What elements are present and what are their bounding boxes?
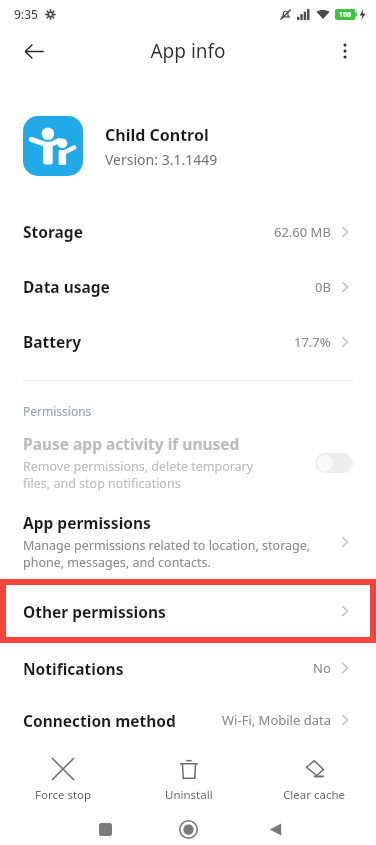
staticText: Permissions bbox=[23, 403, 92, 419]
staticText: 0B bbox=[315, 278, 331, 296]
button[interactable]: Battery bbox=[0, 314, 376, 369]
staticText: Data usage bbox=[23, 276, 110, 297]
staticText: App permissions bbox=[23, 512, 151, 533]
staticText: 17.7% bbox=[294, 333, 331, 351]
button[interactable]: More options bbox=[328, 34, 362, 68]
button[interactable]: Back bbox=[258, 814, 292, 845]
button[interactable]: Other permissions bbox=[3, 582, 373, 640]
staticText: 9:35 bbox=[14, 6, 38, 22]
button[interactable]: Home bbox=[171, 814, 205, 845]
staticText: Notifications bbox=[23, 658, 124, 679]
staticText: Child Control bbox=[105, 124, 209, 146]
staticText: 100 bbox=[339, 10, 352, 20]
button[interactable]: Back bbox=[16, 33, 52, 69]
button[interactable]: Data usage bbox=[0, 259, 376, 314]
button[interactable]: Force stop bbox=[0, 746, 126, 814]
staticText: Version: 3.1.1449 bbox=[105, 150, 218, 169]
staticText: Force stop bbox=[35, 787, 92, 803]
staticText: Battery bbox=[23, 331, 82, 352]
button[interactable]: Storage bbox=[0, 204, 376, 259]
button[interactable]: Pause app activity toggle bbox=[315, 453, 353, 473]
button[interactable]: Notifications bbox=[0, 642, 376, 694]
staticText: App info bbox=[150, 38, 226, 64]
button[interactable]: Clear cache bbox=[251, 746, 376, 814]
button[interactable]: Recents bbox=[88, 814, 122, 845]
staticText: Remove permissions, delete temporary fil… bbox=[23, 458, 254, 492]
staticText: Storage bbox=[23, 221, 83, 242]
button[interactable]: Pause app activity if unused bbox=[0, 433, 376, 492]
staticText: Pause app activity if unused bbox=[23, 433, 240, 454]
staticText: Clear cache bbox=[283, 787, 345, 803]
staticText: Other permissions bbox=[23, 601, 166, 622]
staticText: 62.60 MB bbox=[274, 223, 331, 241]
button[interactable]: Uninstall bbox=[126, 746, 251, 814]
staticText: Uninstall bbox=[165, 787, 213, 803]
staticText: Connection method bbox=[23, 710, 176, 731]
staticText: Manage permissions related to location, … bbox=[23, 537, 311, 571]
staticText: No bbox=[313, 659, 331, 677]
button[interactable]: Connection method bbox=[0, 694, 376, 746]
button[interactable]: App permissions bbox=[0, 512, 376, 571]
staticText: Wi-Fi, Mobile data bbox=[222, 711, 331, 729]
